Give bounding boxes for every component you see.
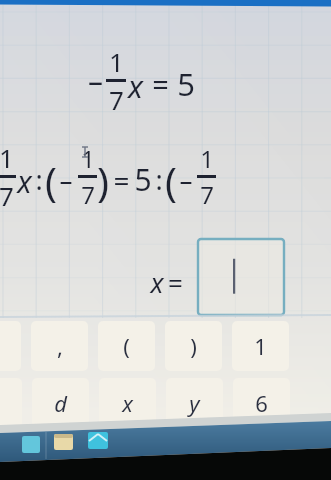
button[interactable]: 1 xyxy=(232,321,289,371)
button[interactable]: Answer input xyxy=(198,239,284,315)
staticText: ( xyxy=(45,154,57,208)
staticText: x xyxy=(150,264,164,301)
staticText: 1 xyxy=(200,142,214,175)
button[interactable]: y xyxy=(166,378,223,428)
staticText: ) xyxy=(190,331,197,361)
staticText: y xyxy=(189,388,200,418)
staticText: – xyxy=(59,162,73,197)
staticText: x xyxy=(128,65,143,107)
staticText: , xyxy=(57,331,63,361)
button[interactable]: ) xyxy=(165,321,222,371)
staticText: – xyxy=(179,162,193,197)
button[interactable]: d xyxy=(32,378,89,428)
staticText: = xyxy=(152,64,169,103)
staticText: : xyxy=(155,161,163,198)
button[interactable]: 6 xyxy=(233,378,290,428)
staticText: x xyxy=(122,388,133,418)
staticText: 1 xyxy=(81,142,95,175)
button[interactable]: x xyxy=(99,378,156,428)
staticText: 6 xyxy=(255,388,268,418)
staticText: 7 xyxy=(81,178,95,211)
staticText: x xyxy=(17,161,32,202)
staticText: – xyxy=(88,60,103,101)
staticText: 7 xyxy=(200,178,214,211)
staticText: = xyxy=(113,161,130,199)
button[interactable] xyxy=(0,378,22,428)
staticText: 7 xyxy=(109,82,124,117)
staticText: 5 xyxy=(177,63,195,105)
staticText: 1 xyxy=(254,331,267,361)
staticText: : xyxy=(35,161,43,198)
staticText: 1 xyxy=(109,44,124,79)
staticText: d xyxy=(54,388,67,418)
staticText: = xyxy=(168,265,183,300)
staticText: ) xyxy=(97,154,109,208)
staticText: ( xyxy=(165,154,177,208)
staticText: ( xyxy=(123,331,130,361)
staticText: 7 xyxy=(0,178,14,213)
button[interactable]: ( xyxy=(98,321,155,371)
staticText: 5 xyxy=(134,159,152,200)
button[interactable]: , xyxy=(31,321,88,371)
staticText: 1 xyxy=(0,140,14,175)
